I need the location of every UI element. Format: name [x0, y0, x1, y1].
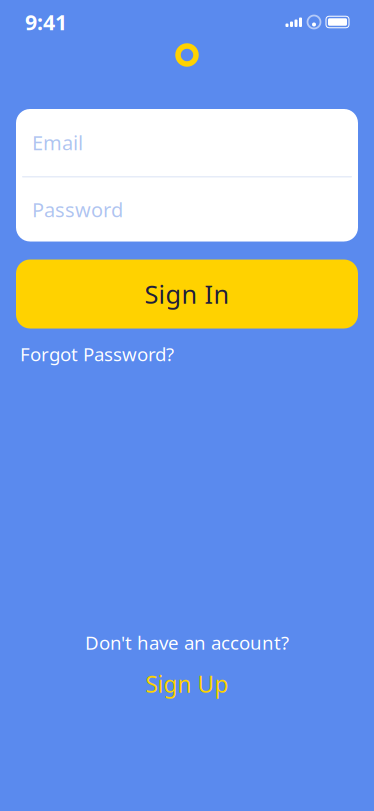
button[interactable]: Sign Up [127, 655, 246, 699]
button[interactable]: Forgot Password? [20, 341, 174, 366]
staticText: Password [32, 196, 123, 223]
staticText: Sign Up [145, 669, 228, 699]
staticText: Don't have an account? [85, 630, 289, 655]
button[interactable]: Sign In [16, 259, 358, 328]
staticText: Sign In [144, 277, 229, 311]
button[interactable]: Password [16, 177, 358, 241]
button[interactable]: Email [16, 109, 358, 176]
staticText: Email [32, 129, 83, 156]
staticText: Forgot Password? [20, 341, 174, 366]
staticText: 9:41 [25, 8, 67, 36]
